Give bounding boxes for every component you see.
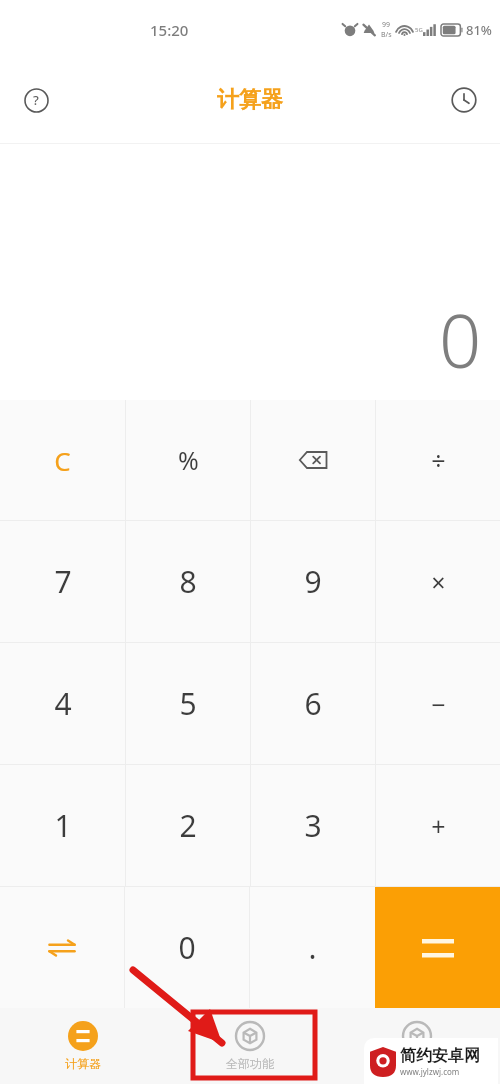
button[interactable]: 0 (125, 887, 249, 1008)
staticText: 全部功能 (226, 1056, 274, 1071)
button[interactable]: C (0, 400, 125, 520)
staticText: ? (33, 91, 39, 109)
staticText: 6 (304, 683, 322, 724)
button[interactable]: 7 (0, 521, 125, 642)
button[interactable]: 全部功能 (166, 1008, 333, 1084)
button[interactable]: Backspace (251, 400, 375, 520)
staticText: 5G (415, 26, 423, 34)
staticText: . (308, 927, 317, 968)
staticText: 9 (304, 561, 322, 602)
staticText: 8 (179, 561, 197, 602)
staticText: 3 (304, 805, 322, 846)
button[interactable]: 5 (126, 643, 250, 764)
button[interactable]: 更多 (333, 1008, 500, 1084)
staticText: − (431, 687, 446, 721)
button[interactable]: × (376, 521, 500, 642)
staticText: 更多 (405, 1056, 429, 1071)
button[interactable]: 1 (0, 765, 125, 886)
staticText: 0 (439, 289, 482, 390)
staticText: ÷ (431, 443, 446, 477)
staticText: 简约安卓网 (400, 1046, 480, 1066)
button[interactable]: 8 (126, 521, 250, 642)
button[interactable]: 9 (251, 521, 375, 642)
staticText: × (431, 565, 446, 599)
button[interactable]: 3 (251, 765, 375, 886)
button[interactable]: 4 (0, 643, 125, 764)
staticText: 81% (466, 21, 492, 39)
button[interactable]: . (250, 887, 375, 1008)
button[interactable]: Help (14, 78, 58, 122)
button[interactable]: % (126, 400, 250, 520)
staticText: + (431, 809, 446, 843)
button[interactable]: 2 (126, 765, 250, 886)
staticText: 计算器 (217, 86, 283, 114)
staticText: 1 (54, 805, 72, 846)
button[interactable]: + (376, 765, 500, 886)
staticText: 计算器 (65, 1056, 101, 1071)
button[interactable]: 6 (251, 643, 375, 764)
staticText: 7 (54, 561, 72, 602)
button[interactable]: 计算器 (0, 1008, 166, 1084)
staticText: 15:20 (150, 20, 189, 40)
staticText: 2 (179, 805, 197, 846)
staticText: 5 (179, 683, 197, 724)
button[interactable]: History (442, 78, 486, 122)
button[interactable]: ÷ (376, 400, 500, 520)
staticText: www.jylzwj.com (400, 1066, 460, 1077)
staticText: 0 (178, 927, 196, 968)
staticText: 4 (54, 683, 72, 724)
staticText: 99 (382, 20, 391, 30)
staticText: B/s (381, 30, 392, 40)
staticText: % (178, 443, 199, 477)
button[interactable]: Equals (375, 887, 500, 1008)
button[interactable]: Swap (0, 887, 124, 1008)
button[interactable]: − (376, 643, 500, 764)
staticText: C (54, 443, 71, 478)
